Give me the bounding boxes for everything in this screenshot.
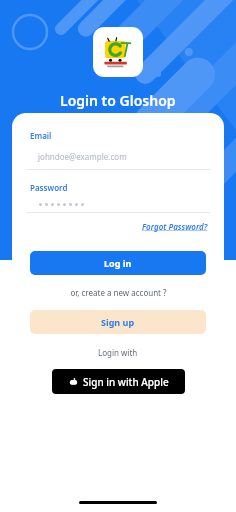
staticText: Sign up — [101, 316, 135, 328]
staticText: Password — [30, 182, 68, 193]
staticText: Sign in with Apple — [83, 375, 169, 389]
staticText: johndoe@example.com — [38, 151, 127, 162]
button[interactable]: Log in — [30, 251, 206, 275]
staticText: Login with — [98, 347, 138, 358]
staticText: Log in — [104, 257, 132, 269]
button[interactable]: Apple logo — [52, 369, 185, 394]
staticText: Email — [30, 130, 52, 141]
staticText: Login to Gloshop — [60, 91, 176, 110]
button[interactable]: or, create a new account ? — [70, 287, 167, 298]
other: Apple logo — [69, 377, 78, 386]
button[interactable]: Forgot Password? — [142, 221, 224, 232]
button[interactable]: Sign up — [30, 310, 206, 334]
